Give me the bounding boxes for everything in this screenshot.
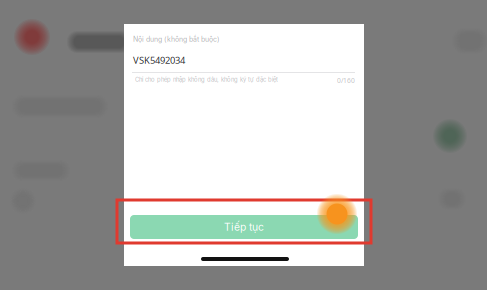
button[interactable]: Nội dung (không bắt buộc): [133, 29, 356, 67]
staticText: Chỉ cho phép nhập không dấu, không ký tự…: [135, 76, 278, 83]
staticText: VSK5492034: [133, 54, 185, 66]
staticText: Nội dung (không bắt buộc): [133, 35, 220, 43]
staticText: 0/160: [337, 76, 355, 85]
staticText: Tiếp tục: [224, 221, 264, 233]
button[interactable]: Tiếp tục: [130, 215, 358, 239]
